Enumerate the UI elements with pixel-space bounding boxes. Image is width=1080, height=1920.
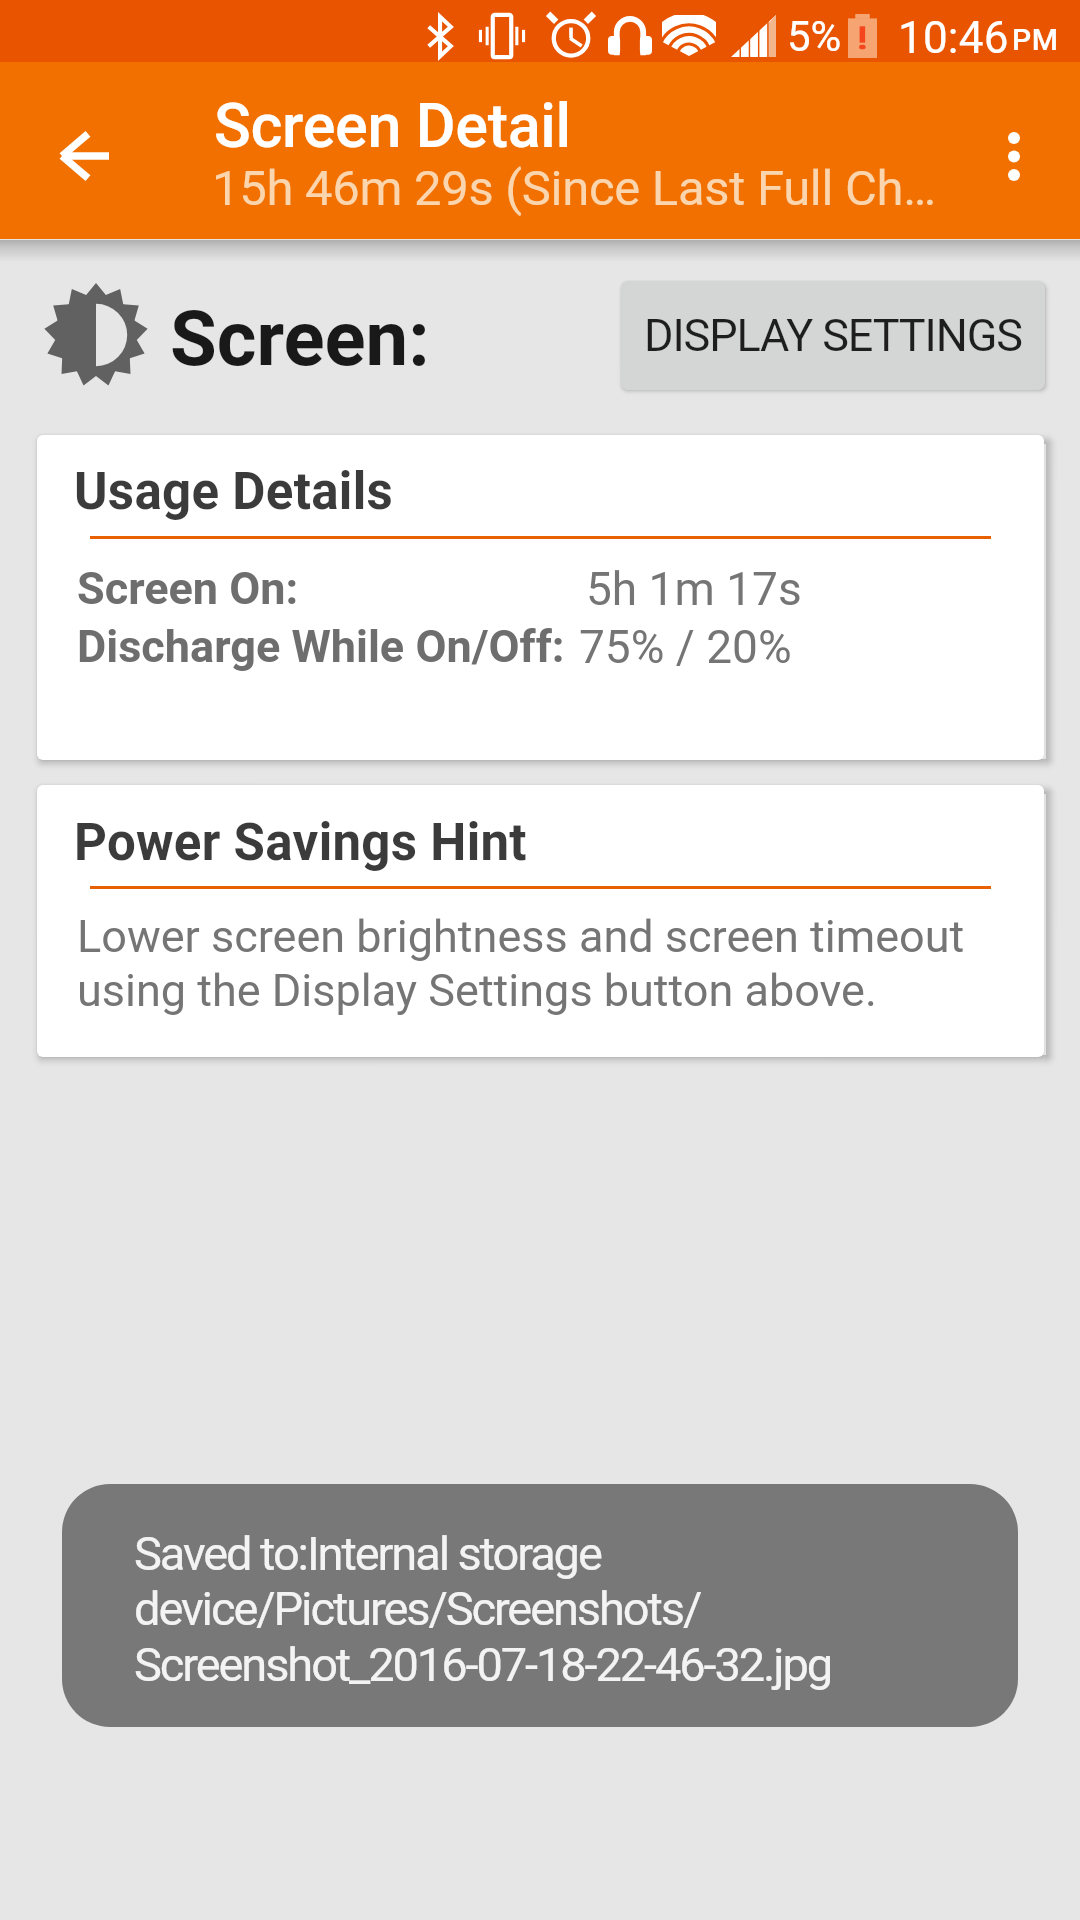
- button[interactable]: Back: [28, 100, 140, 212]
- staticText: Usage Details: [74, 462, 394, 522]
- staticText: PM: [1012, 22, 1059, 57]
- staticText: 10:46: [898, 12, 1009, 64]
- staticText: Power Savings Hint: [74, 813, 527, 873]
- staticText: Lower screen brightness and screen timeo…: [77, 910, 965, 1017]
- staticText: 5h 1m 17s: [586, 562, 802, 616]
- staticText: Screen On:: [77, 562, 299, 615]
- staticText: 5%: [787, 12, 842, 61]
- staticText: DISPLAY SETTINGS: [644, 309, 1022, 362]
- staticText: Screen Detail: [214, 90, 571, 161]
- button[interactable]: DISPLAY SETTINGS: [621, 281, 1045, 390]
- staticText: Saved to:Internal storage device/Picture…: [134, 1526, 832, 1693]
- button[interactable]: More options: [959, 101, 1069, 211]
- staticText: Screen:: [170, 294, 430, 383]
- staticText: 75% / 20%: [579, 620, 792, 674]
- staticText: Discharge While On/Off:: [77, 620, 565, 673]
- staticText: 15h 46m 29s (Since Last Full Ch…: [212, 160, 936, 217]
